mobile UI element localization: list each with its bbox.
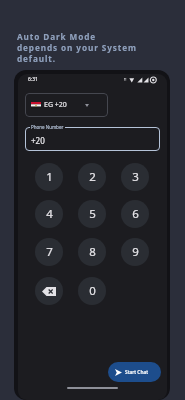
button[interactable]: 8	[78, 238, 106, 266]
staticText: 6	[132, 206, 139, 222]
staticText: 0	[89, 283, 96, 299]
staticText: Auto Dark Mode depends on your System de…	[17, 31, 137, 64]
staticText: 2	[89, 169, 96, 185]
button[interactable]: 0	[78, 277, 106, 305]
button[interactable]: 1	[35, 163, 63, 191]
button[interactable]: 4	[35, 200, 63, 228]
staticText: 7	[46, 244, 53, 260]
staticText: Phone Number	[31, 124, 64, 130]
other: Backspace	[42, 287, 56, 296]
button[interactable]: 9	[121, 238, 149, 266]
staticText: 9	[132, 244, 139, 260]
staticText: 6:31	[28, 76, 38, 83]
staticText: 1	[46, 169, 53, 185]
staticText: 3	[132, 169, 139, 185]
staticText: Start Chat	[125, 369, 148, 376]
button[interactable]: EG +20	[25, 93, 108, 117]
button[interactable]: Backspace	[35, 277, 63, 305]
button[interactable]: 3	[121, 163, 149, 191]
staticText: +20	[31, 135, 45, 146]
button[interactable]: 7	[35, 238, 63, 266]
staticText: 8	[89, 244, 96, 260]
staticText: EG +20	[44, 100, 67, 110]
button[interactable]: 2	[78, 163, 106, 191]
button[interactable]: 6	[121, 200, 149, 228]
staticText: 4	[46, 206, 53, 222]
button[interactable]: Start Chat	[108, 362, 161, 382]
staticText: 5	[89, 206, 96, 222]
button[interactable]: 5	[78, 200, 106, 228]
